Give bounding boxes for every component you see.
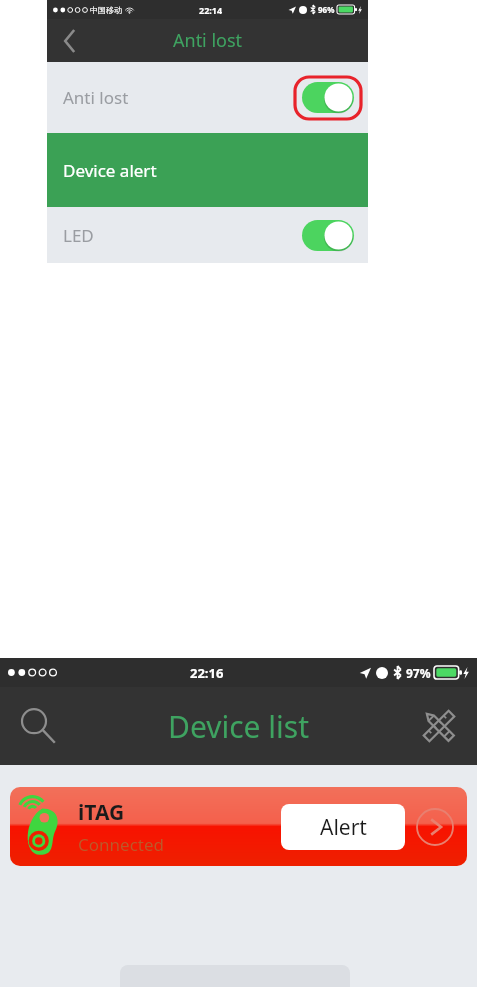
staticText: Device list — [168, 706, 309, 747]
button[interactable]: Anti lost — [47, 62, 368, 133]
staticText: Alert — [320, 813, 367, 842]
staticText: 22:16 — [190, 664, 224, 682]
staticText: 97% — [406, 665, 431, 681]
button[interactable]: Search — [12, 700, 64, 752]
staticText: LED — [63, 224, 94, 247]
button[interactable]: Device alert — [47, 133, 368, 207]
button[interactable]: iTAG — [10, 787, 467, 866]
staticText: Device alert — [63, 159, 157, 182]
button[interactable]: Back — [55, 26, 85, 56]
button[interactable]: LED — [47, 207, 368, 263]
staticText: Anti lost — [173, 28, 243, 53]
staticText: 中国移动 — [90, 5, 122, 15]
staticText: 22:14 — [199, 4, 223, 16]
staticText: iTAG — [78, 798, 125, 827]
button[interactable]: Details — [415, 807, 455, 847]
button[interactable] — [302, 220, 354, 251]
button[interactable] — [302, 82, 354, 113]
button[interactable]: Back — [47, 19, 368, 62]
button[interactable]: Edit — [413, 700, 465, 752]
staticText: Anti lost — [63, 86, 129, 109]
staticText: Connected — [78, 833, 164, 856]
button[interactable]: Alert — [281, 804, 405, 850]
staticText: 96% — [318, 4, 335, 15]
